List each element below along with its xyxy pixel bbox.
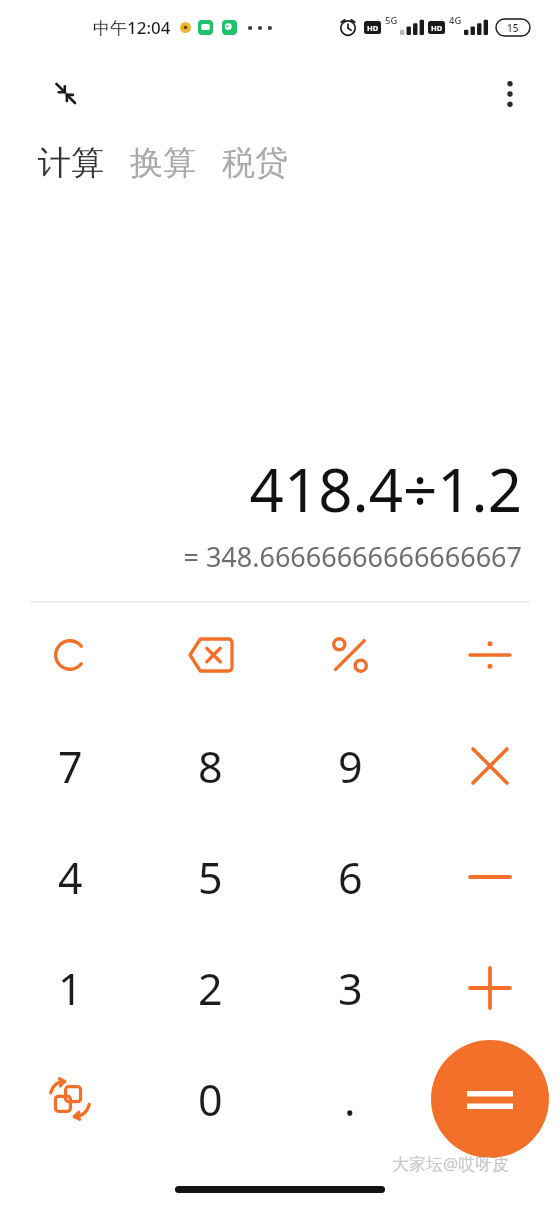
staticText: 计算 <box>38 142 104 184</box>
staticText: 8 <box>198 737 223 796</box>
staticText: 7 <box>58 737 83 796</box>
button[interactable]: . <box>296 1045 404 1153</box>
staticText: 5 <box>198 848 223 907</box>
button[interactable]: Convert <box>16 1045 124 1153</box>
button[interactable]: More options <box>482 66 538 122</box>
button[interactable]: Percent <box>296 601 404 709</box>
staticText: 4 <box>58 848 83 907</box>
button[interactable]: 1 <box>16 934 124 1042</box>
button[interactable]: 8 <box>156 712 264 820</box>
button[interactable]: Exit full screen <box>38 66 94 122</box>
button[interactable]: 9 <box>296 712 404 820</box>
staticText: = 348.66666666666666667 <box>183 538 522 575</box>
staticText: 15 <box>507 21 519 35</box>
staticText: HD <box>431 23 443 33</box>
button[interactable]: Plus <box>436 934 544 1042</box>
staticText: 1 <box>58 959 83 1018</box>
button[interactable]: 4 <box>16 823 124 931</box>
button[interactable]: Equals <box>431 1040 549 1158</box>
button[interactable]: Multiply <box>436 712 544 820</box>
button[interactable]: Minus <box>436 823 544 931</box>
button[interactable]: 2 <box>156 934 264 1042</box>
button[interactable]: 换算 <box>128 140 198 186</box>
staticText: 6 <box>338 848 363 907</box>
staticText: 换算 <box>130 142 196 184</box>
button[interactable]: 0 <box>156 1045 264 1153</box>
staticText: 2 <box>198 959 223 1018</box>
button[interactable]: Clear <box>16 601 124 709</box>
button[interactable]: 5 <box>156 823 264 931</box>
button[interactable]: 6 <box>296 823 404 931</box>
button[interactable]: 计算 <box>36 140 106 186</box>
staticText: 0 <box>198 1070 223 1129</box>
button[interactable]: Divide <box>436 601 544 709</box>
staticText: . <box>344 1070 356 1129</box>
staticText: 418.4÷1.2 <box>249 448 522 530</box>
staticText: 税贷 <box>222 142 288 184</box>
button[interactable]: 7 <box>16 712 124 820</box>
staticText: HD <box>367 23 379 33</box>
staticText: 大家坛@哎呀皮 <box>392 1152 510 1175</box>
staticText: 4G <box>449 14 462 27</box>
button[interactable]: 3 <box>296 934 404 1042</box>
staticText: 9 <box>338 737 363 796</box>
staticText: 3 <box>338 959 363 1018</box>
button[interactable]: Backspace <box>156 601 264 709</box>
button[interactable]: 税贷 <box>220 140 290 186</box>
staticText: 5G <box>385 14 398 27</box>
staticText: 中午12:04 <box>93 16 171 39</box>
